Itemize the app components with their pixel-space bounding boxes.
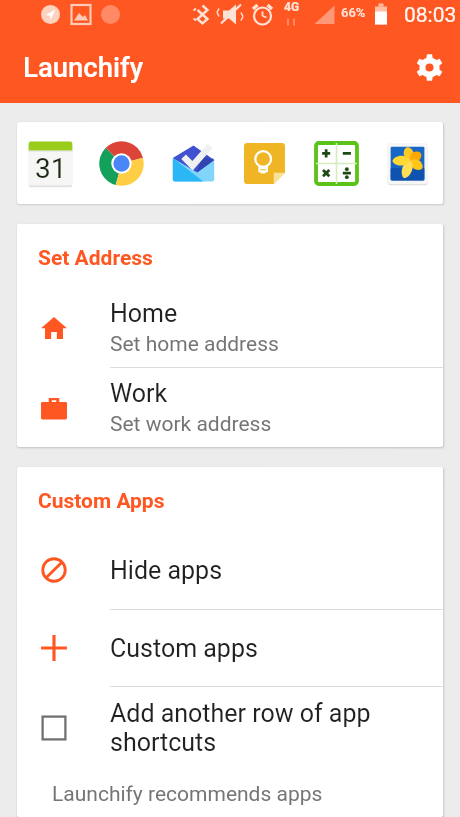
button[interactable]: Home — [17, 288, 443, 367]
staticText: Launchify recommends apps — [52, 782, 323, 807]
button[interactable]: Gallery — [385, 141, 430, 186]
staticText: 66% — [341, 5, 366, 20]
staticText: Hide apps — [110, 556, 223, 585]
button[interactable]: Inbox — [171, 141, 216, 186]
button[interactable]: Custom apps — [17, 610, 443, 686]
staticText: 31 — [35, 152, 67, 185]
staticText: Set work address — [110, 412, 272, 437]
staticText: Home — [110, 299, 178, 328]
button[interactable]: Work — [17, 368, 443, 447]
staticText: Add another row of app shortcuts — [110, 699, 403, 757]
button[interactable]: Chrome — [99, 141, 144, 186]
button[interactable]: Add another row of app shortcuts — [17, 687, 443, 769]
staticText: Launchify — [23, 51, 144, 83]
staticText: Work — [110, 379, 168, 408]
staticText: Custom Apps — [38, 489, 165, 514]
staticText: Set Address — [38, 246, 153, 271]
button[interactable]: Hide apps — [17, 531, 443, 609]
button[interactable]: Calculator — [314, 141, 359, 186]
button[interactable]: Calendar — [28, 141, 73, 186]
staticText: Set home address — [110, 332, 279, 357]
staticText: 08:03 — [404, 3, 457, 28]
staticText: Custom apps — [110, 634, 258, 663]
button[interactable]: Keep — [242, 141, 287, 186]
staticText: 4G — [284, 0, 300, 14]
button[interactable]: Settings — [407, 45, 451, 89]
